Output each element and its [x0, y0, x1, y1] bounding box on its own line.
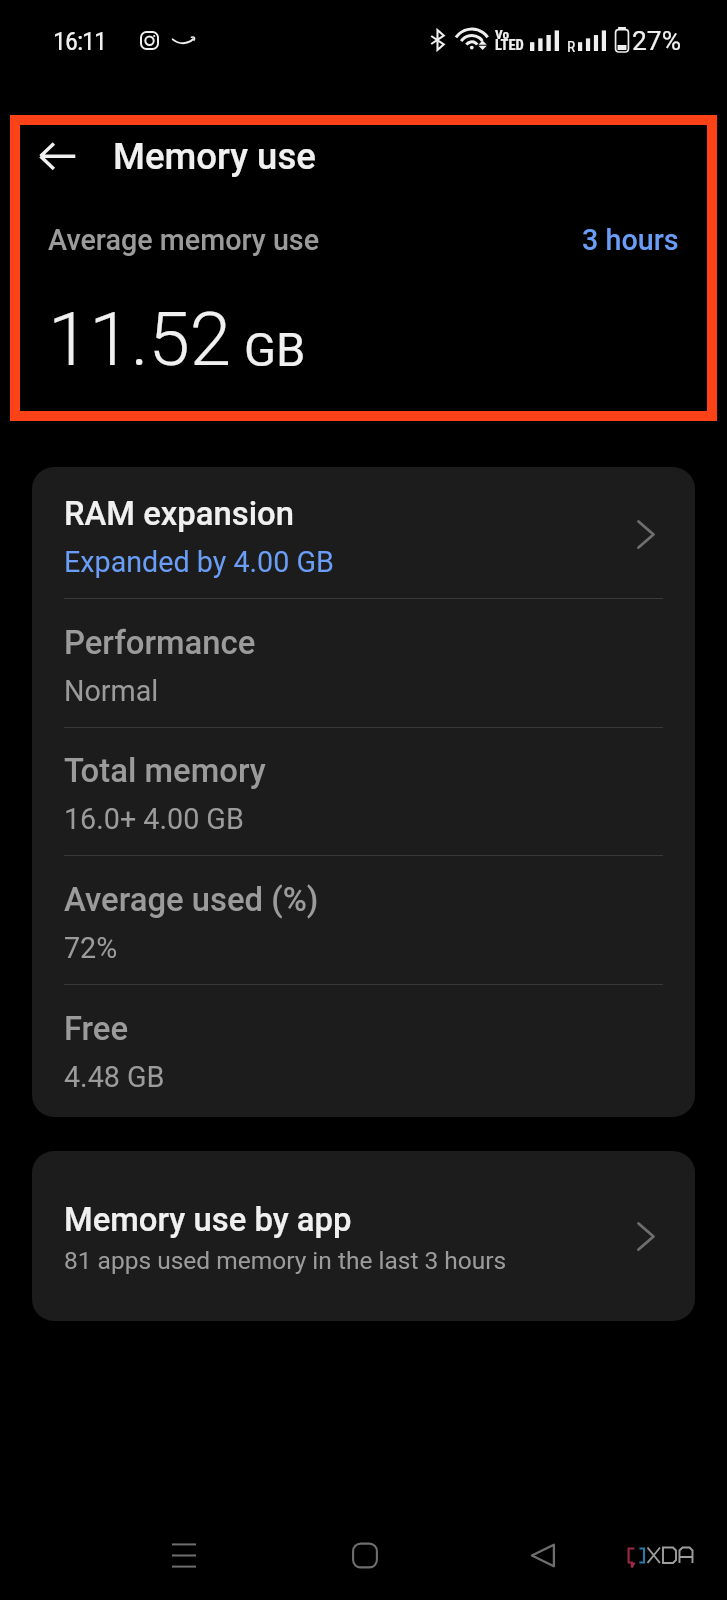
staticText: 72% — [64, 931, 118, 965]
staticText: 27% — [632, 26, 681, 57]
button[interactable]: RAM expansion — [32, 470, 695, 599]
button[interactable]: Home — [335, 1525, 395, 1585]
staticText: 4.48 GB — [64, 1060, 165, 1094]
staticText: Expanded by 4.00 GB — [64, 545, 334, 579]
button[interactable]: Memory use by app — [32, 1151, 695, 1321]
staticText: 16.0+ 4.00 GB — [64, 802, 244, 836]
button[interactable]: Recent apps — [154, 1525, 214, 1585]
staticText: Performance — [64, 624, 256, 662]
staticText: RAM expansion — [64, 495, 295, 533]
staticText: Memory use by app — [64, 1201, 352, 1239]
staticText: 16:11 — [53, 26, 107, 57]
staticText: Total memory — [64, 752, 266, 790]
button[interactable]: Total memory — [32, 727, 695, 856]
button[interactable]: Average used (%) — [32, 856, 695, 985]
staticText: Average memory use — [48, 223, 320, 257]
button[interactable]: 3 hours — [582, 223, 679, 257]
staticText: GB — [244, 322, 306, 377]
staticText: 11.52 — [48, 296, 232, 383]
staticText: Normal — [64, 674, 159, 708]
staticText: Free — [64, 1010, 129, 1048]
button[interactable]: Free — [32, 985, 695, 1114]
staticText: 81 apps used memory in the last 3 hours — [64, 1246, 507, 1275]
staticText: LTED — [495, 36, 524, 53]
staticText: Memory use — [113, 135, 316, 178]
button[interactable]: Back — [513, 1525, 573, 1585]
staticText: R — [567, 38, 576, 56]
button[interactable]: Navigate up — [30, 132, 78, 180]
staticText: Vo — [495, 27, 510, 43]
button[interactable]: Performance — [32, 599, 695, 728]
staticText: Average used (%) — [64, 881, 319, 919]
staticText: 3 hours — [582, 223, 679, 257]
